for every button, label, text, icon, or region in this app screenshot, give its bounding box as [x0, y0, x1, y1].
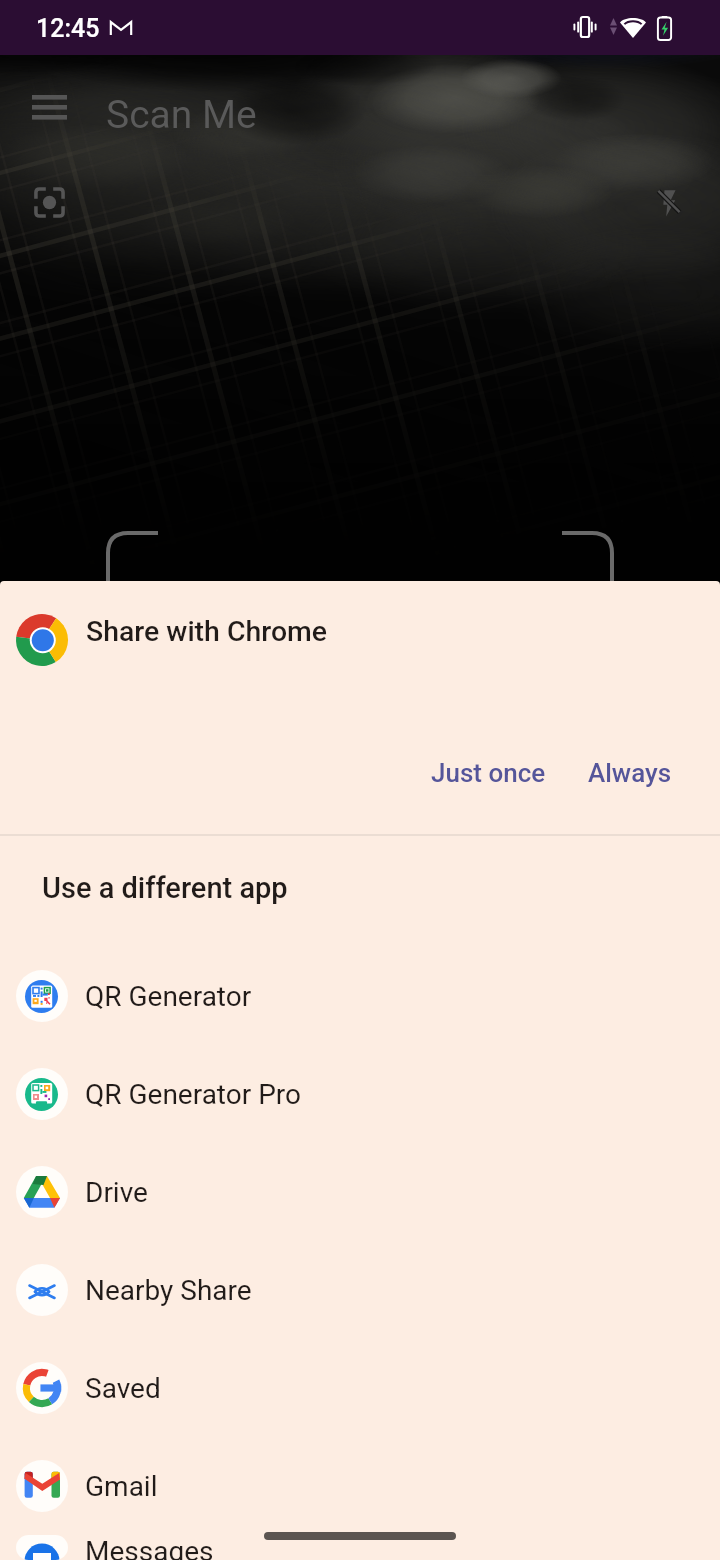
- staticText: Share with Chrome: [86, 615, 327, 648]
- button[interactable]: Always: [574, 746, 686, 800]
- button[interactable]: Scan mode: [31, 184, 68, 221]
- button[interactable]: Share with Chrome: [0, 602, 720, 674]
- button[interactable]: Just once: [417, 746, 560, 800]
- staticText: Messages: [85, 1535, 214, 1560]
- staticText: Nearby Share: [85, 1274, 252, 1307]
- staticText: 12:45: [36, 14, 100, 43]
- button[interactable]: Nearby Share: [0, 1241, 720, 1339]
- button[interactable]: Drive: [0, 1143, 720, 1241]
- staticText: QR Generator: [85, 980, 252, 1013]
- staticText: QR Generator Pro: [85, 1078, 302, 1111]
- staticText: Saved: [85, 1372, 161, 1405]
- staticText: Use a different app: [42, 871, 288, 905]
- button[interactable]: Gmail: [0, 1437, 720, 1535]
- staticText: Drive: [85, 1176, 148, 1209]
- button[interactable]: Flash off: [652, 186, 686, 220]
- button[interactable]: Messages: [0, 1535, 720, 1560]
- staticText: Always: [588, 758, 672, 788]
- button[interactable]: QR Generator Pro: [0, 1045, 720, 1143]
- button[interactable]: QR Generator: [0, 947, 720, 1045]
- button[interactable]: Menu: [32, 95, 67, 120]
- staticText: Just once: [431, 758, 546, 788]
- staticText: Scan Me: [106, 92, 257, 138]
- staticText: Gmail: [85, 1470, 158, 1503]
- button[interactable]: Saved: [0, 1339, 720, 1437]
